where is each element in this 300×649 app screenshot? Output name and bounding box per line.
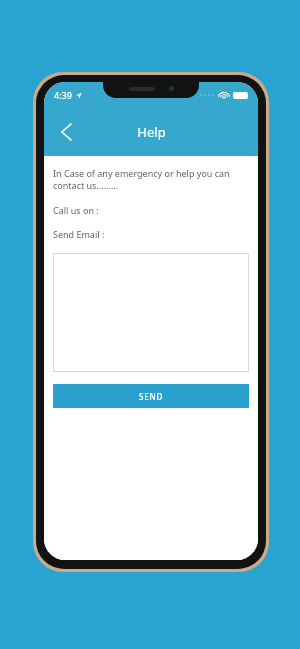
staticText: Send Email : [53, 228, 105, 240]
staticText: Help [137, 123, 166, 141]
button[interactable] [53, 253, 249, 372]
staticText: In Case of any emergency or help you can… [53, 167, 249, 192]
staticText: Call us on : [53, 204, 99, 216]
staticText: SEND [139, 391, 164, 402]
staticText: 4:39 [54, 89, 72, 101]
button[interactable]: SEND [53, 384, 249, 408]
button[interactable]: Back [50, 116, 82, 148]
